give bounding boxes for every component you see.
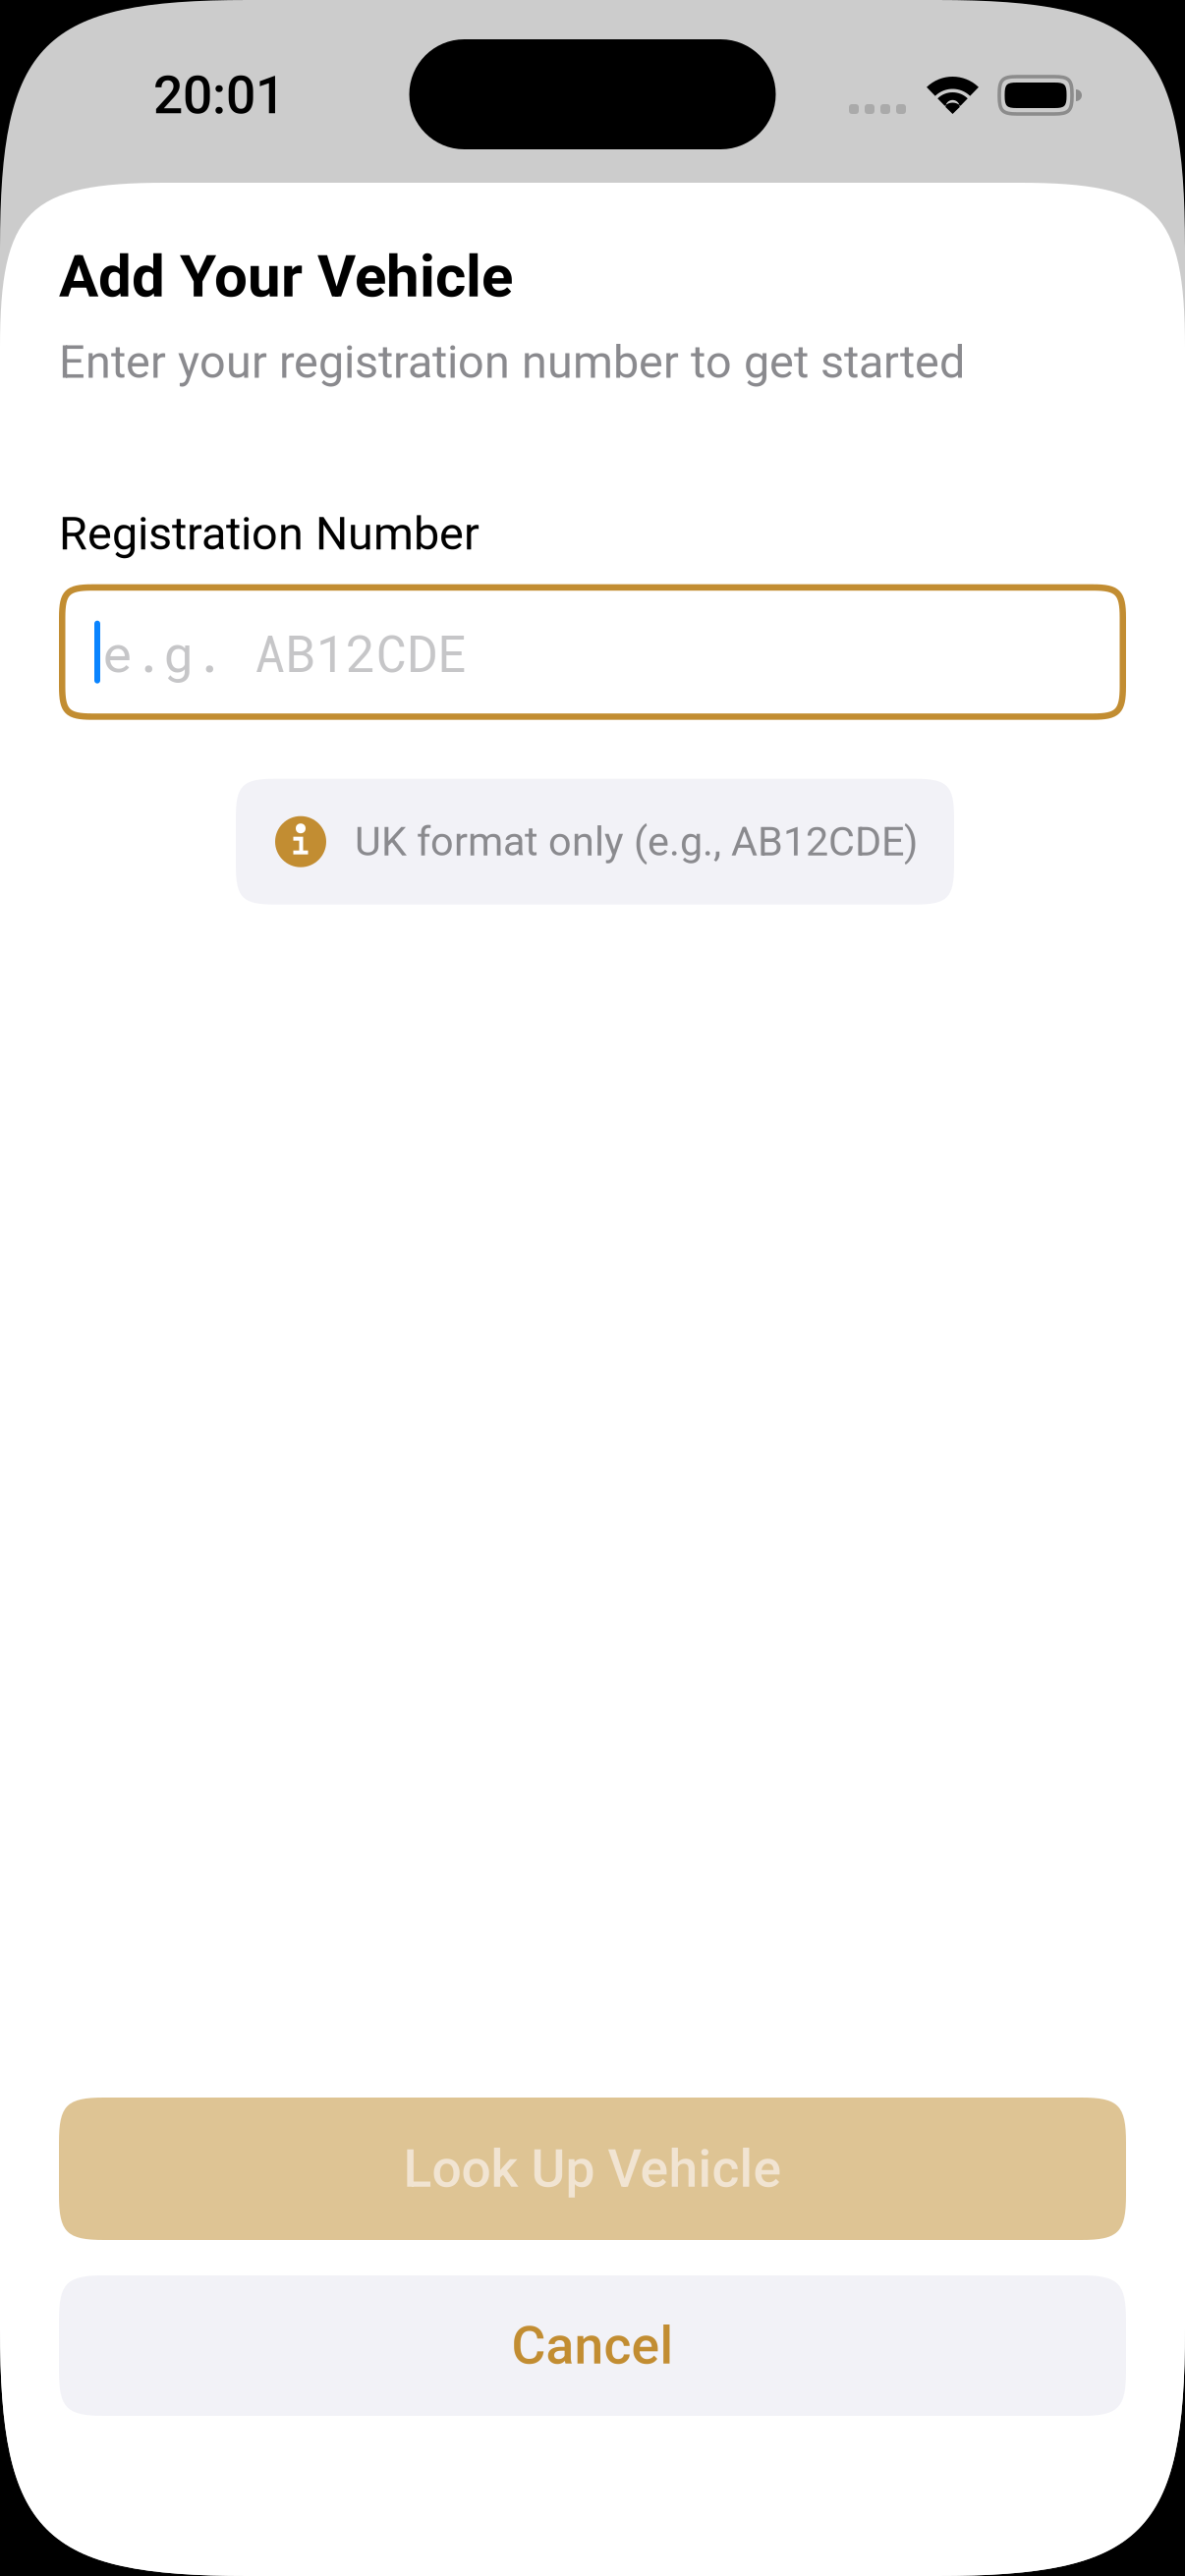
staticText: UK format only (e.g., AB12CDE) — [355, 818, 918, 865]
button[interactable]: Cancel — [59, 2275, 1126, 2416]
staticText: Cancel — [511, 2315, 674, 2376]
button[interactable]: Look Up Vehicle — [59, 2098, 1126, 2240]
staticText: Look Up Vehicle — [403, 2138, 782, 2200]
staticText: 20:01 — [153, 65, 285, 126]
staticText: Enter your registration number to get st… — [59, 335, 965, 389]
staticText: Registration Number — [59, 507, 480, 561]
staticText: Add Your Vehicle — [59, 242, 513, 311]
staticText: e.g. AB12CDE — [102, 618, 468, 686]
